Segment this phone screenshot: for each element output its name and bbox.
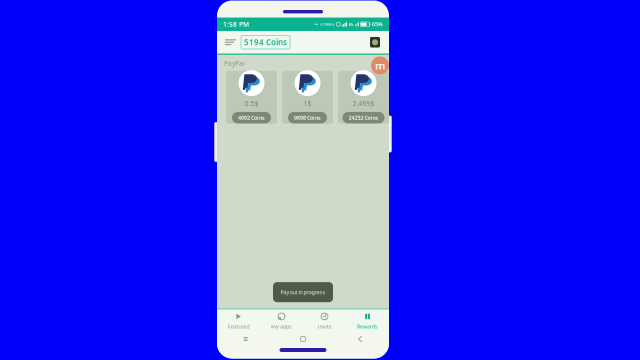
staticText: 1$ [303, 99, 311, 108]
staticText: 2.499$ [352, 99, 374, 108]
staticText: 24252 Coins [348, 114, 378, 121]
button[interactable]: Home [274, 337, 332, 341]
button[interactable]: My apps [260, 309, 303, 332]
staticText: 65% [372, 21, 383, 28]
staticText: Payout in progress [280, 289, 325, 296]
staticText: Rewards [357, 323, 378, 330]
staticText: My apps [271, 323, 292, 330]
staticText: 4092 Coins [238, 114, 265, 121]
staticText: 9.10KB/s [320, 22, 335, 27]
staticText: Invite [317, 323, 331, 330]
button[interactable]: Menu [225, 31, 240, 53]
button[interactable]: Back [332, 336, 389, 342]
button[interactable]: Profile [369, 36, 381, 48]
staticText: Featured [227, 323, 249, 330]
staticText: PayPal [224, 59, 245, 68]
staticText: 4G [348, 22, 353, 27]
staticText: m [375, 58, 385, 72]
button[interactable]: Featured [217, 309, 260, 332]
button[interactable]: 2.499$ [338, 71, 389, 124]
button[interactable]: 1$ [282, 71, 333, 124]
button[interactable]: 0.5$ [226, 71, 277, 124]
staticText: 1:58 PM [223, 20, 249, 29]
button[interactable]: 5194 Coins [241, 35, 290, 49]
button[interactable]: Invite [303, 309, 346, 332]
staticText: 9898 Coins [294, 114, 321, 121]
staticText: 5194 Coins [244, 37, 287, 47]
staticText: 0.5$ [244, 99, 258, 108]
button[interactable]: Recents [217, 337, 274, 341]
button[interactable]: Rewards [346, 309, 389, 332]
